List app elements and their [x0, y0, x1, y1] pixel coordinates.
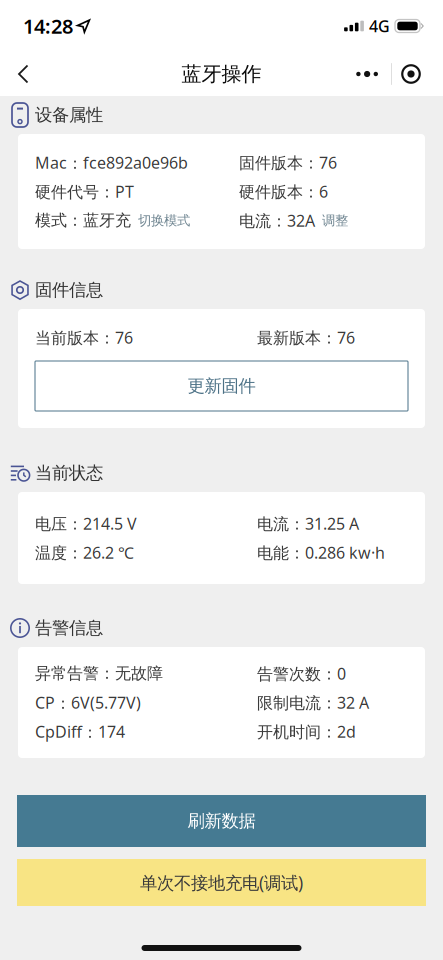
button[interactable]: 更新固件 [35, 361, 408, 411]
staticText: 设备属性 [35, 104, 103, 126]
staticText: 14:28 [23, 13, 73, 39]
staticText: Mac：fce892a0e96b [35, 152, 188, 173]
staticText: 异常告警：无故障 [35, 664, 163, 683]
staticText: 蓝牙操作 [181, 62, 261, 86]
staticText: 固件版本：76 [239, 152, 337, 173]
staticText: CpDiff：174 [35, 721, 125, 742]
staticText: 模式：蓝牙充 [35, 211, 131, 230]
button[interactable]: Close [392, 56, 430, 92]
staticText: 电能：0.286 kw·h [257, 542, 385, 563]
staticText: 告警次数：0 [257, 663, 346, 684]
staticText: 固件信息 [35, 279, 103, 301]
button[interactable]: More [344, 56, 378, 92]
staticText: 当前版本：76 [35, 327, 133, 348]
button[interactable]: 刷新数据 [17, 795, 426, 847]
button[interactable]: Back [0, 52, 39, 96]
staticText: 更新固件 [187, 375, 255, 397]
button[interactable]: 单次不接地充电(调试) [17, 859, 426, 906]
staticText: 调整 [322, 212, 348, 229]
staticText: 电流：32A [239, 210, 315, 231]
staticText: 硬件代号：PT [35, 181, 134, 202]
staticText: 硬件版本：6 [239, 181, 328, 202]
button[interactable]: 调整 [315, 212, 348, 229]
staticText: 单次不接地充电(调试) [140, 871, 303, 894]
staticText: 开机时间：2d [257, 721, 356, 742]
staticText: CP：6V(5.77V) [35, 692, 141, 713]
staticText: 切换模式 [138, 212, 190, 229]
staticText: 电流：31.25 A [257, 513, 359, 534]
staticText: 告警信息 [35, 617, 103, 639]
button[interactable]: 切换模式 [131, 212, 190, 229]
staticText: 当前状态 [35, 462, 103, 484]
staticText: 限制电流：32 A [257, 692, 369, 713]
staticText: 刷新数据 [187, 810, 255, 832]
staticText: 4G [369, 15, 390, 37]
staticText: 温度：26.2 ℃ [35, 542, 134, 563]
staticText: 电压：214.5 V [35, 513, 137, 534]
staticText: 最新版本：76 [257, 327, 355, 348]
